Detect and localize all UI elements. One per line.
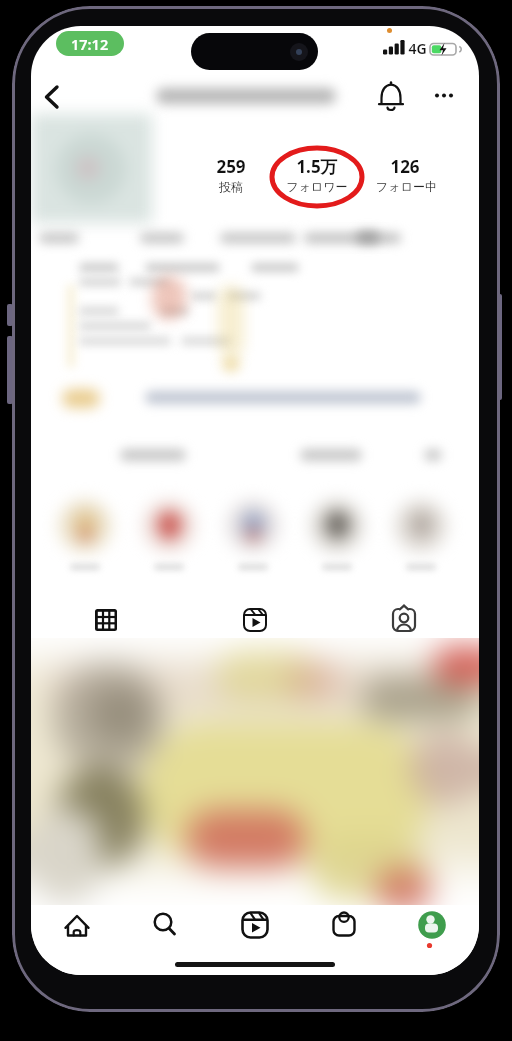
button[interactable]: 17:12 xyxy=(56,31,124,56)
button[interactable] xyxy=(32,594,180,642)
button[interactable] xyxy=(281,151,353,199)
staticText: フォロー中 xyxy=(376,179,437,194)
button[interactable] xyxy=(377,81,407,111)
staticText: 17:12 xyxy=(71,34,109,54)
button[interactable] xyxy=(429,81,461,111)
button[interactable] xyxy=(181,594,329,642)
staticText: フォロワー xyxy=(286,179,348,194)
staticText: 4G xyxy=(408,39,427,58)
staticText: 投稿 xyxy=(219,179,243,194)
button[interactable] xyxy=(369,151,443,199)
button[interactable] xyxy=(136,906,192,956)
staticText: 259 xyxy=(216,155,246,178)
button[interactable] xyxy=(316,906,372,956)
button[interactable] xyxy=(199,151,263,199)
button[interactable] xyxy=(404,906,460,956)
button[interactable] xyxy=(39,81,75,113)
button[interactable] xyxy=(227,906,283,956)
staticText: 1.5万 xyxy=(296,155,338,178)
button[interactable] xyxy=(49,906,105,956)
button[interactable] xyxy=(330,594,478,642)
staticText: 126 xyxy=(390,155,420,178)
